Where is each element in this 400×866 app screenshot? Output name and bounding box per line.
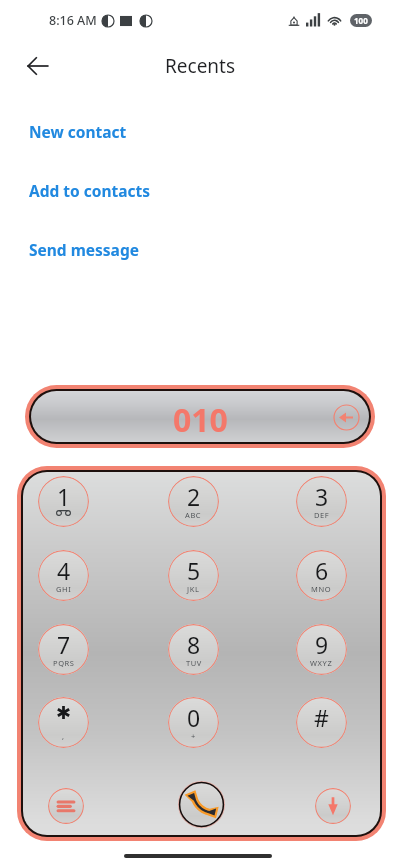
button[interactable]: New contact: [0, 112, 400, 150]
button[interactable]: Hide keypad: [315, 788, 351, 824]
staticText: Add to contacts: [29, 180, 151, 201]
staticText: New contact: [29, 121, 127, 142]
button[interactable]: 6: [296, 550, 347, 601]
button[interactable]: #: [296, 697, 347, 748]
staticText: +: [191, 731, 196, 741]
staticText: 0: [187, 702, 201, 733]
button[interactable]: 0: [168, 697, 219, 748]
button[interactable]: Back: [18, 46, 58, 86]
staticText: 5: [187, 555, 201, 586]
staticText: Recents: [165, 53, 236, 79]
staticText: 1: [57, 481, 71, 512]
button[interactable]: 4: [38, 550, 89, 601]
staticText: JKL: [187, 584, 200, 594]
button[interactable]: 9: [296, 624, 347, 675]
staticText: 8: [187, 629, 201, 660]
staticText: 9: [315, 629, 329, 660]
staticText: 8:16 AM: [49, 12, 97, 29]
staticText: MNO: [311, 584, 332, 594]
staticText: 6: [315, 555, 329, 586]
staticText: ,: [62, 731, 65, 741]
staticText: #: [314, 702, 329, 733]
button[interactable]: Call: [178, 781, 225, 828]
staticText: GHI: [56, 584, 72, 594]
button[interactable]: ,: [38, 697, 89, 748]
button[interactable]: 8: [168, 624, 219, 675]
staticText: PQRS: [53, 658, 75, 668]
button[interactable]: 5: [168, 550, 219, 601]
staticText: DEF: [314, 510, 330, 520]
staticText: 100: [354, 15, 368, 26]
button[interactable]: Backspace: [331, 402, 361, 432]
staticText: 4: [57, 555, 71, 586]
staticText: TUV: [186, 658, 202, 668]
button[interactable]: 1: [38, 476, 89, 527]
button[interactable]: Send message: [0, 230, 400, 268]
button[interactable]: Add to contacts: [0, 171, 400, 209]
button[interactable]: 2: [168, 476, 219, 527]
button[interactable]: Menu: [48, 788, 84, 824]
button[interactable]: 3: [296, 476, 347, 527]
staticText: Send message: [29, 239, 139, 260]
staticText: 7: [57, 629, 71, 660]
staticText: 3: [315, 481, 329, 512]
button[interactable]: 7: [38, 624, 89, 675]
staticText: ABC: [185, 510, 202, 520]
staticText: WXYZ: [310, 658, 333, 668]
staticText: 2: [187, 481, 201, 512]
staticText: 010: [173, 398, 228, 442]
